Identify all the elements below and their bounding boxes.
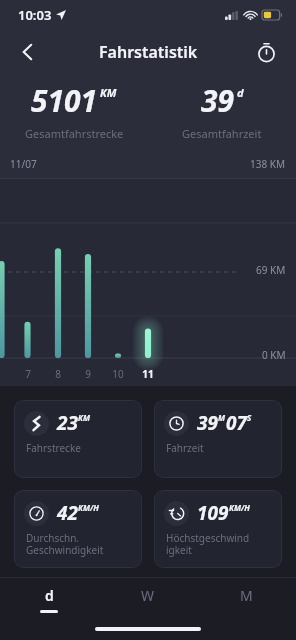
staticText: KM xyxy=(100,85,117,100)
staticText: Höchstgeschwind igkeit xyxy=(166,531,276,557)
staticText: d xyxy=(237,85,244,100)
button[interactable]: 39 xyxy=(154,400,282,478)
staticText: 39 xyxy=(201,80,235,121)
staticText: 39 xyxy=(197,410,218,436)
staticText: 9 xyxy=(85,367,91,381)
staticText: 5101 xyxy=(31,80,98,121)
staticText: d xyxy=(45,586,54,605)
staticText: S xyxy=(247,412,252,423)
staticText: 109 xyxy=(197,500,229,526)
staticText: W xyxy=(141,586,155,605)
staticText: KM xyxy=(78,412,90,423)
staticText: 7 xyxy=(25,367,31,381)
staticText: 10 xyxy=(112,367,124,381)
button[interactable]: W xyxy=(98,578,197,618)
staticText: 138 KM xyxy=(250,157,286,171)
staticText: Gesamtfahrzeit xyxy=(182,126,262,141)
staticText: 11/07 xyxy=(10,157,37,171)
button[interactable]: M xyxy=(197,578,296,618)
staticText: 8 xyxy=(55,367,61,381)
button[interactable]: d xyxy=(0,578,98,618)
staticText: Fahrzeit xyxy=(166,441,204,455)
button[interactable]: Back xyxy=(8,32,48,72)
button[interactable]: 5101 xyxy=(0,74,148,150)
staticText: M xyxy=(240,586,253,605)
staticText: 0 KM xyxy=(262,348,286,362)
staticText: Fahrstrecke xyxy=(26,441,81,455)
staticText: 69 KM xyxy=(256,263,286,277)
button[interactable]: 23 xyxy=(14,400,142,478)
staticText: Gesamtfahrstrecke xyxy=(25,126,124,141)
button[interactable]: Timer xyxy=(246,32,286,72)
staticText: 23 xyxy=(57,410,78,436)
staticText: KM/H xyxy=(229,502,250,513)
staticText: 07 xyxy=(226,410,247,436)
staticText: KM/H xyxy=(78,502,99,513)
staticText: 42 xyxy=(57,500,78,526)
staticText: Durchschn. Geschwindigkeit xyxy=(26,531,136,557)
button[interactable]: 109 xyxy=(154,490,282,568)
staticText: Fahrstatistik xyxy=(99,41,198,63)
staticText: 10:03 xyxy=(18,6,52,24)
staticText: 11 xyxy=(142,367,154,381)
button[interactable]: 39 xyxy=(148,74,296,150)
staticText: M xyxy=(218,412,226,423)
button[interactable]: 42 xyxy=(14,490,142,568)
